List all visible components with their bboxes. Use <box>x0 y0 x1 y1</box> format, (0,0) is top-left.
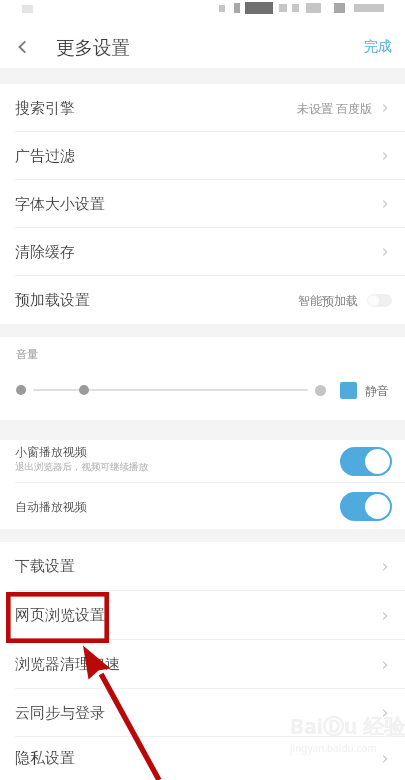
staticText: 智能预加载 <box>298 293 358 308</box>
button[interactable]: 字体大小设置 <box>0 180 405 228</box>
staticText: 小窗播放视频 <box>15 444 87 459</box>
button[interactable]: 完成 <box>364 38 392 56</box>
button[interactable]: 云同步与登录 <box>0 689 405 737</box>
button[interactable]: Toggle <box>367 294 392 307</box>
button[interactable]: 小窗播放视频 <box>0 440 405 483</box>
button[interactable]: 下载设置 <box>0 542 405 591</box>
staticText: 搜索引擎 <box>15 99 297 118</box>
button[interactable]: 浏览器清理加速 <box>0 640 405 689</box>
staticText: 未设置 百度版 <box>297 100 373 116</box>
staticText: 自动播放视频 <box>15 499 340 514</box>
button[interactable]: 隐私设置 <box>0 737 405 780</box>
staticText: 清除缓存 <box>15 243 373 262</box>
button[interactable]: Mute checkbox <box>340 382 357 399</box>
staticText: 退出浏览器后，视频可继续播放 <box>15 461 148 473</box>
button[interactable]: Toggle switch <box>340 492 392 521</box>
staticText: 隐私设置 <box>15 749 373 768</box>
button[interactable]: 广告过滤 <box>0 132 405 180</box>
staticText: 预加载设置 <box>15 291 298 310</box>
staticText: 网页浏览设置 <box>15 606 373 625</box>
button[interactable]: 搜索引擎 <box>0 84 405 132</box>
staticText: 云同步与登录 <box>15 704 373 723</box>
button[interactable]: Back <box>0 26 46 68</box>
staticText: 字体大小设置 <box>15 195 373 214</box>
button[interactable]: 网页浏览设置 <box>0 591 405 640</box>
staticText: 浏览器清理加速 <box>15 655 373 674</box>
button[interactable]: 自动播放视频 <box>15 483 392 529</box>
staticText: 下载设置 <box>15 557 373 576</box>
staticText: 音量 <box>16 347 38 361</box>
button[interactable]: 预加载设置 <box>0 276 405 324</box>
staticText: BaiⒹu 经验 <box>290 712 405 741</box>
staticText: jingyan.baidu.com <box>290 741 377 755</box>
staticText: 更多设置 <box>56 36 130 59</box>
button[interactable]: Toggle switch <box>340 447 392 476</box>
staticText: 完成 <box>364 38 392 56</box>
staticText: 广告过滤 <box>15 147 373 166</box>
button[interactable]: 清除缓存 <box>0 228 405 276</box>
staticText: 静音 <box>365 383 389 398</box>
